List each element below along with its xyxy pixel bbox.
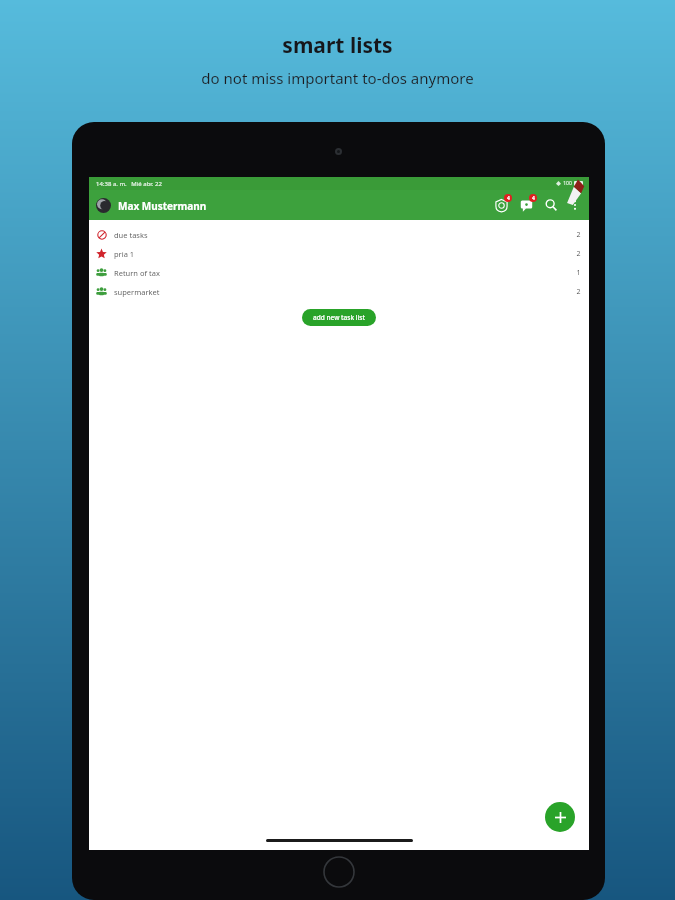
button[interactable]: add new task list: [302, 309, 376, 326]
staticText: 4: [507, 195, 510, 202]
staticText: add new task list: [313, 313, 365, 322]
button[interactable]: Reminders: [493, 197, 509, 213]
staticText: 2: [576, 249, 581, 259]
button[interactable]: pria 1: [89, 244, 589, 263]
staticText: 4: [532, 195, 535, 202]
button[interactable]: More options: [568, 198, 582, 212]
button[interactable]: Search: [543, 197, 559, 213]
staticText: Return of tax: [114, 268, 576, 278]
button[interactable]: due tasks: [89, 225, 589, 244]
staticText: smart lists: [282, 31, 393, 60]
staticText: due tasks: [114, 230, 576, 240]
button[interactable]: Return of tax: [89, 263, 589, 282]
staticText: 2: [576, 230, 581, 240]
button[interactable]: Account: [96, 198, 111, 213]
button[interactable]: Messages: [518, 197, 534, 213]
staticText: pria 1: [114, 249, 576, 259]
staticText: supermarket: [114, 287, 576, 297]
button[interactable]: Add task: [545, 802, 575, 832]
staticText: Max Mustermann: [118, 199, 207, 213]
staticText: do not miss important to-dos anymore: [201, 68, 474, 88]
staticText: 2: [576, 287, 581, 297]
staticText: 100: [563, 180, 572, 187]
button[interactable]: supermarket: [89, 282, 589, 301]
staticText: 14:38 a. m. Mié abr. 22: [96, 180, 162, 188]
staticText: 1: [576, 268, 581, 278]
